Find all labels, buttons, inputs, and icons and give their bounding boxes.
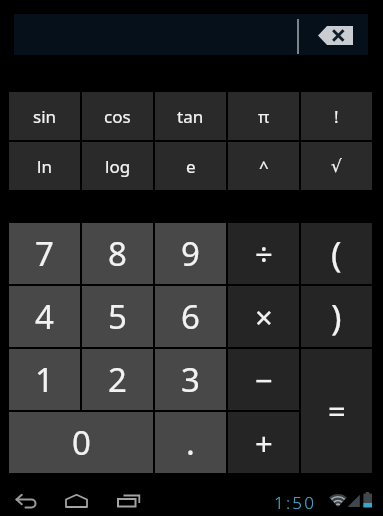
staticText: ln: [37, 155, 52, 178]
button[interactable]: [112, 487, 146, 513]
staticText: 1:50: [274, 491, 317, 514]
staticText: e: [186, 155, 196, 178]
staticText: 3: [181, 357, 200, 402]
staticText: π: [258, 105, 270, 128]
staticText: ): [331, 293, 342, 341]
button[interactable]: [14, 14, 368, 55]
button[interactable]: =: [301, 349, 372, 473]
button[interactable]: ×: [228, 286, 299, 347]
button[interactable]: 4: [9, 286, 80, 347]
button[interactable]: .: [155, 412, 226, 473]
staticText: ×: [255, 296, 273, 338]
button[interactable]: log: [82, 142, 153, 190]
staticText: 2: [108, 357, 127, 402]
staticText: cos: [104, 105, 131, 128]
button[interactable]: cos: [82, 92, 153, 140]
staticText: ÷: [255, 233, 273, 275]
button[interactable]: π: [228, 92, 299, 140]
button[interactable]: −: [228, 349, 299, 410]
staticText: −: [255, 359, 273, 401]
button[interactable]: [60, 487, 92, 513]
staticText: 5: [108, 294, 127, 339]
staticText: .: [186, 420, 195, 465]
button[interactable]: 9: [155, 223, 226, 284]
button[interactable]: ^: [228, 142, 299, 190]
button[interactable]: sin: [9, 92, 80, 140]
button[interactable]: ): [301, 286, 372, 347]
staticText: sin: [33, 105, 57, 128]
staticText: 4: [35, 294, 54, 339]
button[interactable]: 6: [155, 286, 226, 347]
button[interactable]: ln: [9, 142, 80, 190]
button[interactable]: 1: [9, 349, 80, 410]
staticText: 8: [108, 231, 127, 276]
button[interactable]: 8: [82, 223, 153, 284]
button[interactable]: tan: [155, 92, 226, 140]
button[interactable]: !: [301, 92, 372, 140]
button[interactable]: (: [301, 223, 372, 284]
button[interactable]: [314, 23, 357, 48]
staticText: √: [331, 156, 342, 176]
button[interactable]: 0: [9, 412, 153, 473]
staticText: tan: [177, 105, 204, 128]
button[interactable]: 7: [9, 223, 80, 284]
button[interactable]: √: [301, 142, 372, 190]
staticText: =: [328, 390, 346, 432]
button[interactable]: 2: [82, 349, 153, 410]
staticText: +: [255, 422, 273, 464]
staticText: 6: [181, 294, 200, 339]
staticText: 1: [35, 357, 54, 402]
staticText: !: [334, 105, 339, 128]
button[interactable]: +: [228, 412, 299, 473]
staticText: log: [105, 155, 131, 178]
button[interactable]: ÷: [228, 223, 299, 284]
button[interactable]: [10, 487, 44, 513]
staticText: ^: [259, 155, 269, 178]
staticText: (: [331, 230, 342, 278]
button[interactable]: e: [155, 142, 226, 190]
button[interactable]: 5: [82, 286, 153, 347]
staticText: 9: [181, 231, 200, 276]
button[interactable]: 3: [155, 349, 226, 410]
staticText: 0: [72, 420, 91, 465]
staticText: 7: [35, 231, 54, 276]
